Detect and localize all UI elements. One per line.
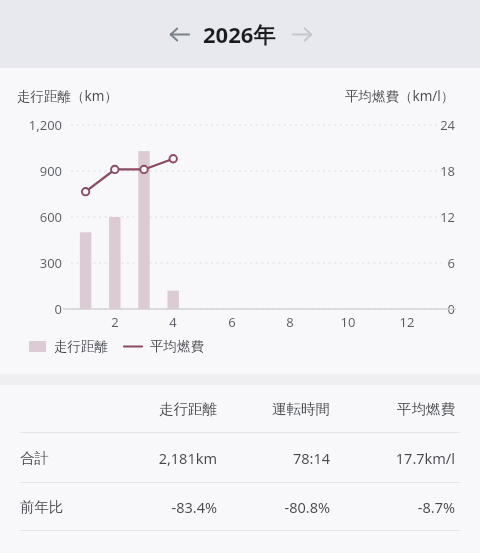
staticText: 18 bbox=[415, 162, 455, 180]
button[interactable]: Previous year bbox=[161, 16, 197, 52]
staticText: 6 bbox=[216, 313, 248, 331]
staticText: 1,200 bbox=[0, 116, 62, 134]
staticText: 24 bbox=[415, 116, 455, 134]
staticText: 12 bbox=[391, 313, 423, 331]
staticText: 2,181km bbox=[107, 448, 217, 468]
staticText: 平均燃費（km/l） bbox=[345, 87, 455, 105]
staticText: 前年比 bbox=[20, 498, 64, 516]
button[interactable]: 前年比 bbox=[0, 483, 480, 530]
staticText: 走行距離（km） bbox=[17, 87, 118, 105]
staticText: 6 bbox=[415, 254, 455, 272]
staticText: 600 bbox=[0, 208, 62, 226]
staticText: 平均燃費 bbox=[150, 338, 204, 355]
staticText: 12 bbox=[415, 208, 455, 226]
staticText: 走行距離 bbox=[107, 400, 217, 418]
staticText: 900 bbox=[0, 162, 62, 180]
staticText: 走行距離 bbox=[54, 338, 108, 355]
staticText: 0 bbox=[0, 300, 62, 318]
staticText: 17.7km/l bbox=[345, 448, 455, 468]
staticText: 78:14 bbox=[220, 448, 330, 468]
staticText: 8 bbox=[274, 313, 306, 331]
staticText: -80.8% bbox=[220, 497, 330, 517]
button[interactable]: Next year bbox=[284, 16, 320, 52]
staticText: 300 bbox=[0, 254, 62, 272]
staticText: 合計 bbox=[20, 449, 49, 467]
staticText: 平均燃費 bbox=[345, 400, 455, 418]
staticText: 0 bbox=[415, 300, 455, 318]
button[interactable]: 合計 bbox=[0, 433, 480, 482]
staticText: 2026年 bbox=[203, 19, 276, 49]
staticText: 10 bbox=[332, 313, 364, 331]
staticText: -83.4% bbox=[107, 497, 217, 517]
staticText: 運転時間 bbox=[220, 400, 330, 418]
staticText: -8.7% bbox=[345, 497, 455, 517]
staticText: 2 bbox=[99, 313, 131, 331]
staticText: 4 bbox=[157, 313, 189, 331]
